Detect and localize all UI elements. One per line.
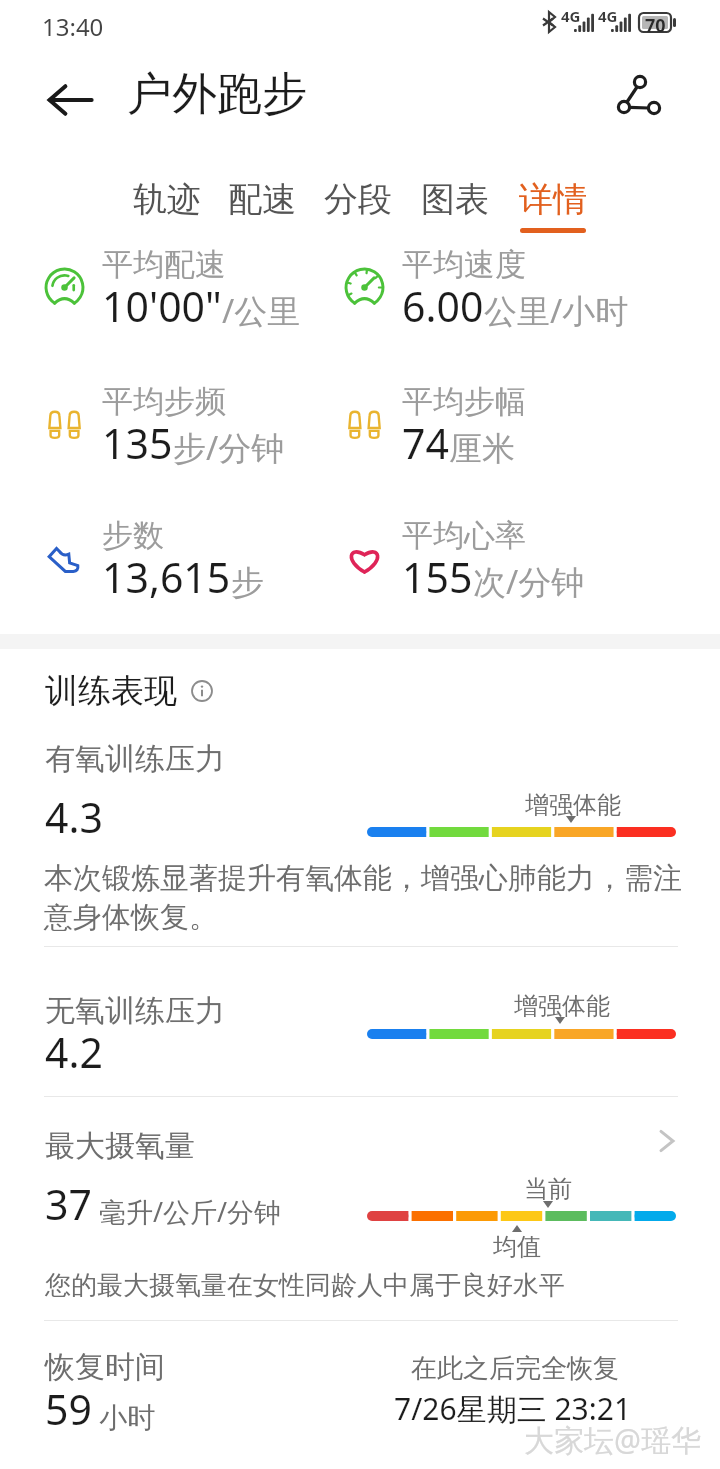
staticText: 59 xyxy=(45,1381,92,1437)
staticText: /公里 xyxy=(222,288,301,333)
button[interactable]: Info xyxy=(191,680,213,702)
button[interactable]: 配速 xyxy=(214,162,310,242)
button[interactable]: 平均步频 xyxy=(38,382,338,482)
staticText: 有氧训练压力 xyxy=(45,740,225,778)
staticText: 轨迹 xyxy=(133,178,201,221)
staticText: 恢复时间 xyxy=(45,1348,165,1386)
staticText: 毫升/公斤/分钟 xyxy=(92,1193,282,1230)
staticText: 无氧训练压力 xyxy=(45,992,225,1030)
staticText: 平均步幅 xyxy=(402,382,526,421)
staticText: 平均步频 xyxy=(102,382,226,421)
staticText: 在此之后完全恢复 xyxy=(411,1352,619,1385)
staticText: 6.00 xyxy=(402,278,484,334)
staticText: 图表 xyxy=(421,178,489,221)
staticText: 7/26星期三 23:21 xyxy=(394,1388,632,1429)
staticText: 4G xyxy=(598,6,618,26)
staticText: 均值 xyxy=(493,1232,541,1262)
staticText: 详情 xyxy=(519,178,587,221)
button[interactable]: 平均配速 xyxy=(38,245,338,345)
button[interactable]: 轨迹 xyxy=(119,162,215,242)
button[interactable]: 平均心率 xyxy=(338,516,638,616)
staticText: 步 xyxy=(231,562,264,604)
staticText: 步数 xyxy=(102,516,164,555)
staticText: 37 xyxy=(45,1176,92,1232)
button[interactable]: Back xyxy=(38,68,102,132)
staticText: 训练表现 xyxy=(45,670,177,712)
staticText: 13:40 xyxy=(42,10,104,43)
button[interactable]: 图表 xyxy=(407,162,503,242)
staticText: 步/分钟 xyxy=(173,425,285,470)
staticText: 大家坛@瑶华 xyxy=(524,1419,701,1460)
staticText: 次/分钟 xyxy=(473,559,585,604)
button[interactable]: 平均步幅 xyxy=(338,382,638,482)
staticText: 平均心率 xyxy=(402,516,526,555)
staticText: 公里/小时 xyxy=(484,288,629,333)
staticText: 户外跑步 xyxy=(127,66,307,123)
staticText: 分段 xyxy=(324,178,392,221)
staticText: 70 xyxy=(645,13,666,32)
button[interactable]: 详情 xyxy=(505,162,601,242)
button[interactable]: 分段 xyxy=(310,162,406,242)
button[interactable]: 步数 xyxy=(38,516,338,616)
staticText: 4.3 xyxy=(45,789,103,845)
staticText: 4.2 xyxy=(45,1024,103,1080)
button[interactable]: 平均速度 xyxy=(338,245,638,345)
staticText: 您的最大摄氧量在女性同龄人中属于良好水平 xyxy=(45,1269,565,1302)
staticText: 增强体能 xyxy=(525,790,621,820)
staticText: 本次锻炼显著提升有氧体能，增强心肺能力，需注意身体恢复。 xyxy=(44,860,686,936)
staticText: 135 xyxy=(102,415,173,471)
staticText: 13,615 xyxy=(102,549,231,605)
staticText: 配速 xyxy=(228,178,296,221)
button[interactable] xyxy=(0,1110,720,1190)
staticText: 小时 xyxy=(92,1397,156,1435)
staticText: 平均速度 xyxy=(402,245,526,284)
staticText: 增强体能 xyxy=(514,991,610,1021)
staticText: 厘米 xyxy=(449,428,515,470)
staticText: 74 xyxy=(402,415,449,471)
staticText: 最大摄氧量 xyxy=(45,1127,195,1165)
staticText: 155 xyxy=(402,549,473,605)
staticText: 10'00" xyxy=(102,278,222,334)
staticText: 4G xyxy=(561,6,581,26)
staticText: 平均配速 xyxy=(102,245,226,284)
button[interactable]: Share xyxy=(600,65,664,129)
staticText: 当前 xyxy=(524,1174,572,1204)
